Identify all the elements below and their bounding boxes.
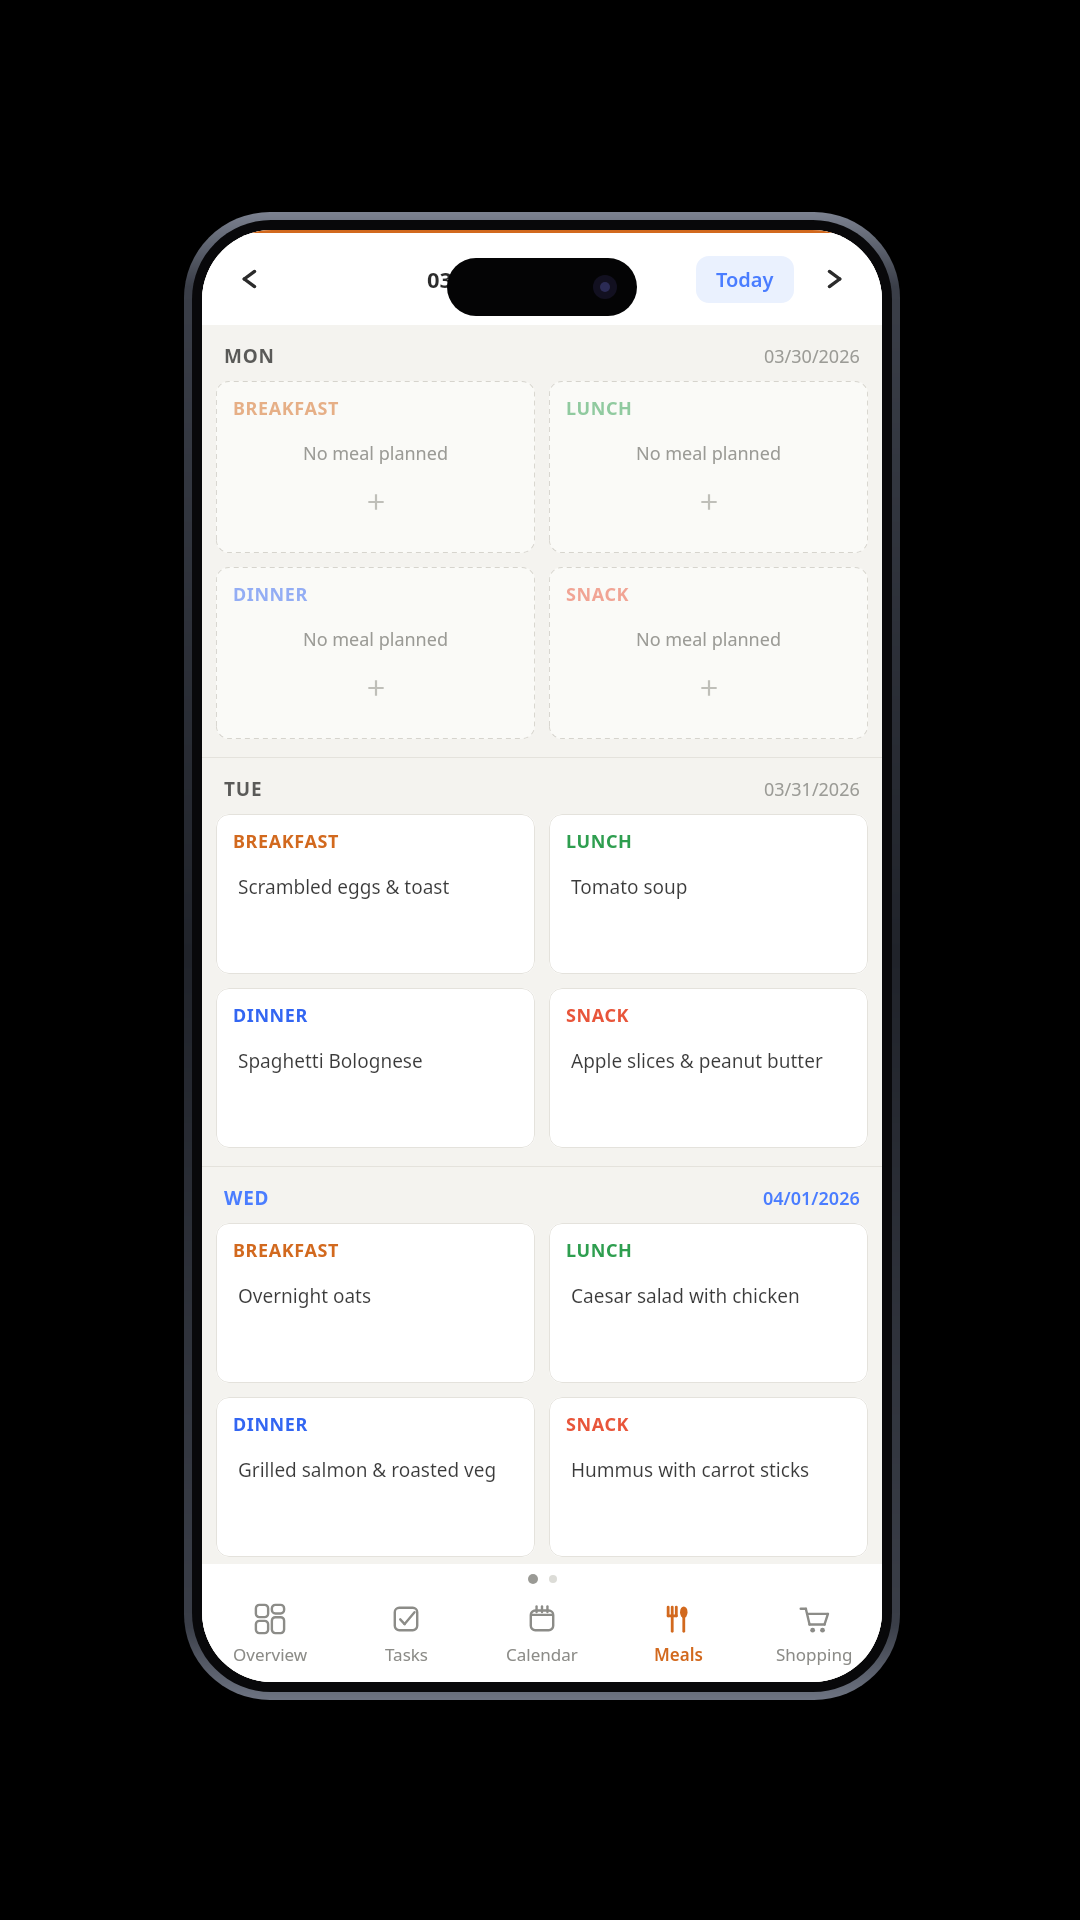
staticText: WED: [224, 1185, 270, 1211]
staticText: 03/31/2026: [764, 777, 860, 802]
staticText: Overview: [233, 1643, 308, 1666]
staticText: LUNCH: [566, 1238, 633, 1263]
staticText: No meal planned: [303, 627, 448, 652]
button[interactable]: DINNER: [216, 567, 535, 739]
button[interactable]: Previous week: [222, 252, 276, 306]
staticText: No meal planned: [303, 441, 448, 466]
staticText: Hummus with carrot sticks: [571, 1457, 810, 1483]
staticText: TUE: [224, 776, 263, 802]
button[interactable]: Shopping: [746, 1586, 882, 1682]
staticText: Caesar salad with chicken: [571, 1283, 800, 1309]
staticText: DINNER: [233, 1003, 308, 1028]
button[interactable]: BREAKFAST: [216, 814, 535, 974]
staticText: MON: [224, 343, 275, 369]
staticText: Tasks: [385, 1643, 428, 1666]
button[interactable]: DINNER: [216, 988, 535, 1148]
staticText: 03/30/2026: [427, 264, 546, 294]
staticText: LUNCH: [566, 396, 633, 421]
staticText: 04/01/2026: [763, 1186, 860, 1211]
staticText: LUNCH: [566, 829, 633, 854]
button[interactable]: LUNCH: [549, 1223, 868, 1383]
staticText: Tomato soup: [571, 874, 688, 900]
staticText: Shopping: [776, 1643, 853, 1666]
staticText: Apple slices & peanut butter: [571, 1048, 823, 1074]
button[interactable]: Meals: [610, 1586, 746, 1682]
staticText: Calendar: [506, 1643, 578, 1666]
staticText: Scrambled eggs & toast: [238, 874, 450, 900]
staticText: Spaghetti Bolognese: [238, 1048, 423, 1074]
button[interactable]: BREAKFAST: [216, 381, 535, 553]
staticText: No meal planned: [636, 627, 781, 652]
staticText: Grilled salmon & roasted veg: [238, 1457, 497, 1483]
button[interactable]: BREAKFAST: [216, 1223, 535, 1383]
staticText: SNACK: [566, 582, 630, 607]
button[interactable]: DINNER: [216, 1397, 535, 1557]
staticText: No meal planned: [636, 441, 781, 466]
staticText: BREAKFAST: [233, 829, 339, 854]
staticText: SNACK: [566, 1003, 630, 1028]
staticText: 03/30/2026: [764, 344, 860, 369]
staticText: SNACK: [566, 1412, 630, 1437]
staticText: BREAKFAST: [233, 1238, 339, 1263]
button[interactable]: Calendar: [474, 1586, 610, 1682]
button[interactable]: SNACK: [549, 988, 868, 1148]
button[interactable]: LUNCH: [549, 381, 868, 553]
staticText: BREAKFAST: [233, 396, 339, 421]
button[interactable]: SNACK: [549, 567, 868, 739]
button[interactable]: Overview: [202, 1586, 338, 1682]
button[interactable]: Tasks: [338, 1586, 474, 1682]
staticText: DINNER: [233, 582, 308, 607]
staticText: DINNER: [233, 1412, 308, 1437]
staticText: Meals: [654, 1643, 703, 1666]
button[interactable]: SNACK: [549, 1397, 868, 1557]
button[interactable]: Today: [696, 256, 794, 303]
button[interactable]: Next week: [808, 252, 862, 306]
button[interactable]: LUNCH: [549, 814, 868, 974]
staticText: Overnight oats: [238, 1283, 372, 1309]
staticText: Today: [716, 266, 774, 293]
